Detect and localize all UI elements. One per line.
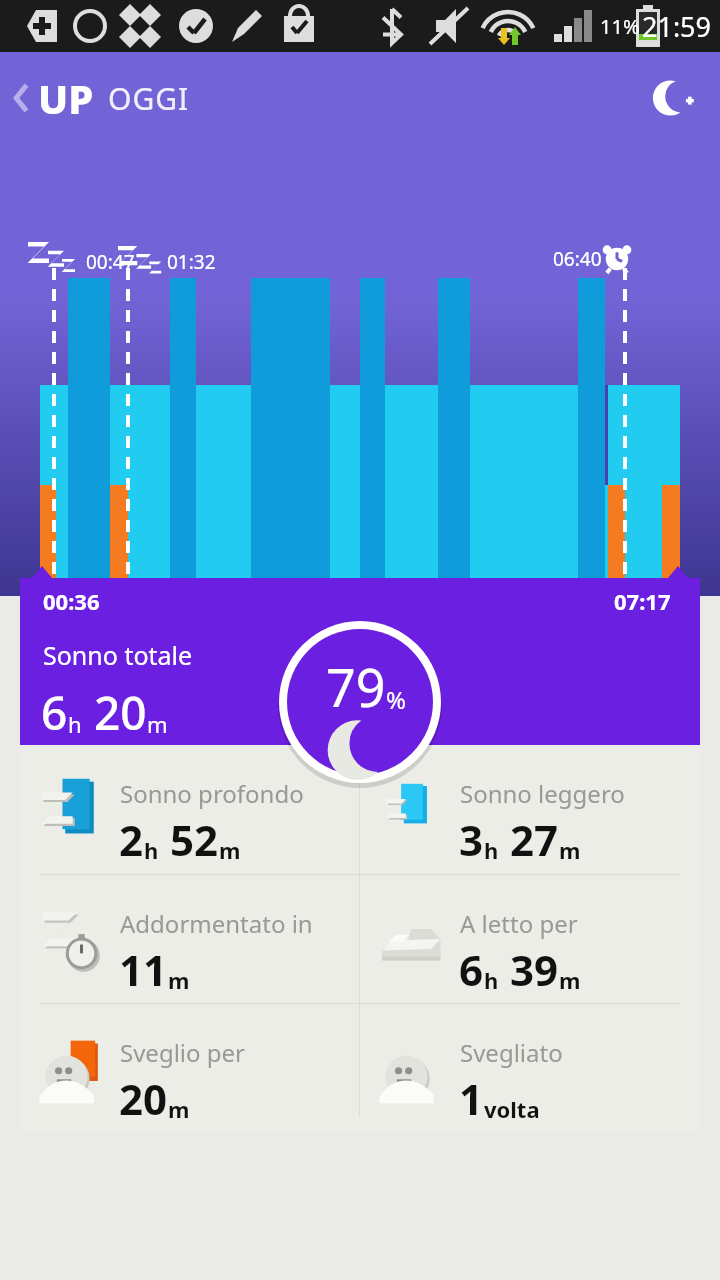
staticText: 11 xyxy=(119,941,168,998)
staticText: volta xyxy=(484,1094,540,1124)
staticText: m xyxy=(147,709,168,739)
staticText: 27 xyxy=(510,811,559,868)
staticText: 20 xyxy=(119,1070,168,1127)
staticText: m xyxy=(559,965,581,995)
staticText: 79 xyxy=(326,651,386,722)
staticText: m xyxy=(168,1094,190,1124)
staticText: 00:47 xyxy=(86,249,135,275)
staticText: 21:59 xyxy=(642,8,712,45)
button[interactable]: Sveglio per xyxy=(20,1004,360,1133)
button[interactable]: Sonno leggero xyxy=(360,745,700,874)
staticText: 06:40 xyxy=(553,246,602,272)
staticText: OGGI xyxy=(108,78,190,119)
staticText: 07:17 xyxy=(614,586,671,616)
staticText: 01:32 xyxy=(167,249,216,275)
button[interactable]: Svegliato xyxy=(360,1004,700,1133)
staticText: 52 xyxy=(170,811,219,868)
staticText: 11% xyxy=(600,13,640,40)
staticText: 20 xyxy=(94,681,147,744)
staticText: Sonno leggero xyxy=(460,777,625,810)
button[interactable]: Aggiungi sonno xyxy=(646,70,702,126)
staticText: 6 xyxy=(41,681,68,744)
staticText: m xyxy=(559,835,581,865)
staticText: m xyxy=(219,835,241,865)
staticText: 1 xyxy=(459,1070,484,1127)
staticText: Sveglio per xyxy=(120,1036,246,1069)
button[interactable]: A letto per xyxy=(360,875,700,1004)
staticText: h xyxy=(484,835,499,865)
staticText: Svegliato xyxy=(460,1036,563,1069)
button[interactable]: Punteggio sonno 79 percento xyxy=(277,619,443,785)
button[interactable]: Sonno profondo xyxy=(20,745,360,874)
staticText: h xyxy=(68,709,82,739)
staticText: Sonno totale xyxy=(43,638,193,672)
button[interactable]: Addormentato in xyxy=(20,875,360,1004)
staticText: h xyxy=(144,835,159,865)
staticText: 39 xyxy=(510,941,559,998)
staticText: % xyxy=(386,683,406,716)
staticText: UP xyxy=(38,71,94,125)
button[interactable]: UP xyxy=(6,65,194,131)
staticText: m xyxy=(168,965,190,995)
staticText: 2 xyxy=(119,811,144,868)
staticText: Sonno profondo xyxy=(120,777,304,810)
staticText: 00:36 xyxy=(43,586,100,616)
staticText: h xyxy=(484,965,499,995)
staticText: 6 xyxy=(459,941,484,998)
staticText: A letto per xyxy=(460,907,578,940)
staticText: Addormentato in xyxy=(120,907,313,940)
staticText: 3 xyxy=(459,811,484,868)
